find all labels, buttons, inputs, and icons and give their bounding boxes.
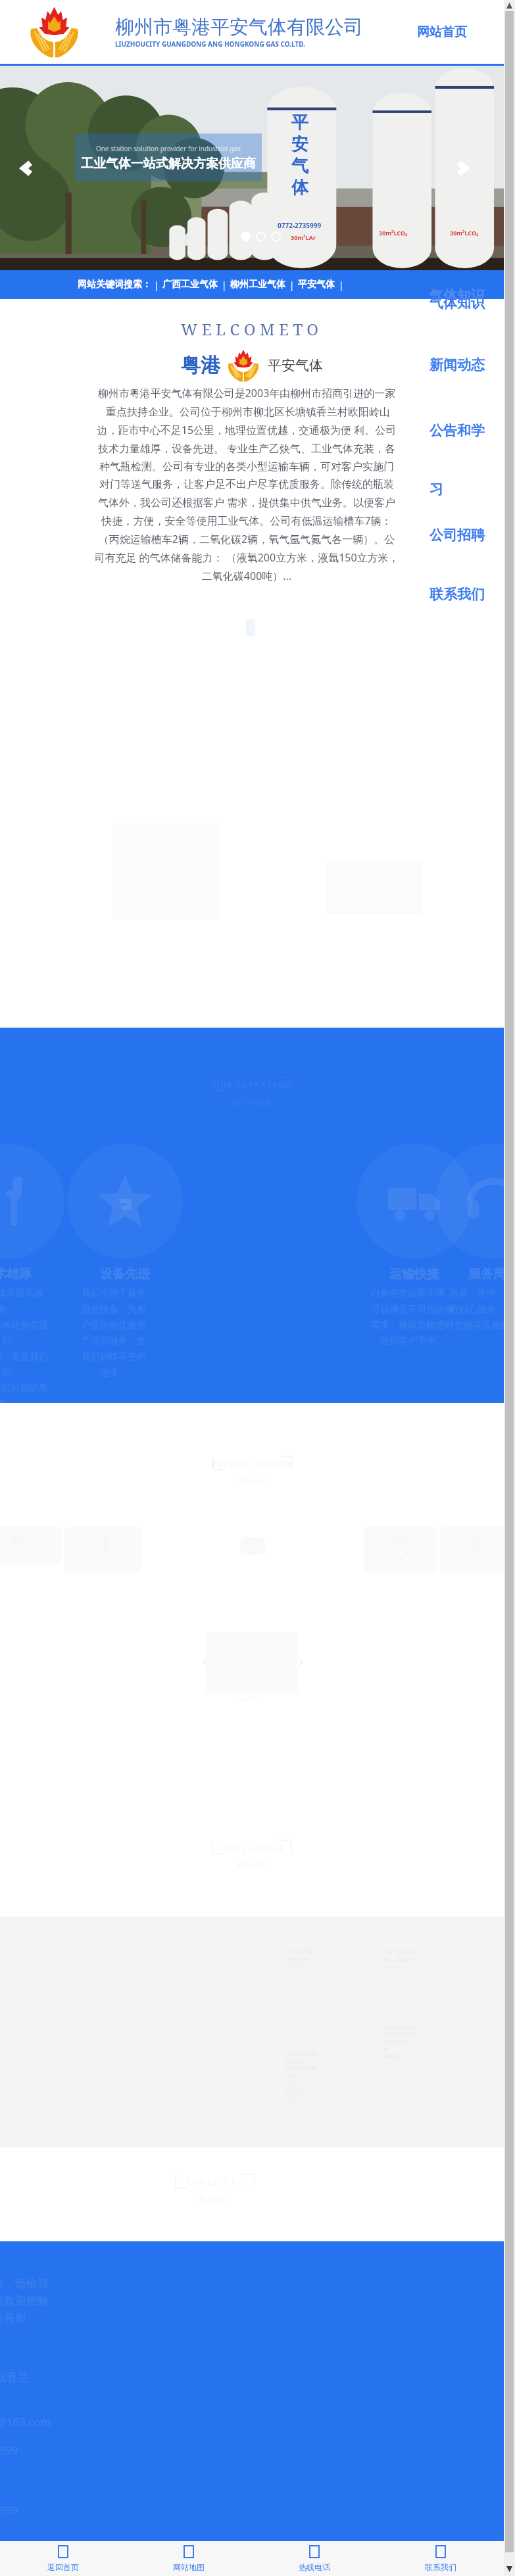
staticText: 技术雄厚 [0,1266,32,1282]
button[interactable]: 新闻动态 [429,354,485,375]
staticText: 习 [429,481,443,498]
staticText: 传真：0772-2735999 [0,2443,18,2458]
button[interactable]: Slide 2 [256,231,266,241]
staticText: 0772-2735999 [278,221,322,230]
staticText: 运输快捷 [389,1266,439,1282]
button[interactable]: 服务周到 [434,1143,515,1331]
staticText: | [287,279,297,291]
staticText: 网站首页 [417,24,467,40]
staticText: 工业气体一站式解决方案供应商 [81,156,256,172]
staticText: PRODUCT CENTER [212,1458,293,1469]
button[interactable]: 气体知识 [429,293,485,314]
staticText: 设备先进 [100,1266,150,1282]
staticText: 热线电话 [299,2562,330,2572]
staticText: 网站地图 [173,2562,205,2572]
staticText: 气体知识 [429,287,485,304]
staticText: 平安气体 [268,357,323,374]
button[interactable]: 网站首页 [409,19,475,45]
button[interactable]: 公司招聘 [429,525,485,546]
staticText: 联系我们 [429,586,485,603]
button[interactable]: 联系我们 [429,584,485,605]
button[interactable]: Previous slide [13,154,42,183]
button[interactable]: 技术雄厚 [0,1143,66,1410]
staticText: 自备各类运输车辆， 可以满足不同的运输 需求，确保货物准时 送到客户手中。 [371,1287,454,1347]
staticText: 如果您想了解更多关于我们的信息，请给我 [0,2277,49,2291]
button[interactable]: 习 [429,479,443,500]
staticText: CONTACT US [187,2176,243,2187]
button[interactable]: 联系我们 [378,2541,504,2576]
staticText: 气体知识 [429,295,485,312]
staticText: 公司招聘 [429,527,485,544]
staticText: 地址：广西柳州市柳北区长塘镇香兰 [0,2371,29,2385]
button[interactable]: Slide 1 [241,231,251,241]
staticText: 网站关键词搜索： [78,279,151,291]
staticText: 服务周到 [468,1266,515,1282]
staticText: 们留言，我们期待与您的合作，也欢迎您致 [0,2294,49,2308]
staticText: 平 安 气 体 [291,112,308,198]
staticText: One station solution provider for indust… [96,144,241,153]
staticText: 我们引进了最先 进的设备，为客 户提供最优质的 产品和服务，是 我们始终不变的 … [82,1287,146,1378]
staticText: LIUZHOUCITY GUANGDONG ANG HONGKONG GAS C… [115,39,305,49]
button[interactable]: Next slide [447,154,476,183]
button[interactable]: 广西工业气体 [161,279,219,291]
button[interactable]: 公告和学 [429,420,485,441]
button[interactable]: 网站地图 [126,2541,251,2576]
staticText: 平安气体 [298,279,335,291]
staticText: 30m³LCO₂ [379,229,408,237]
staticText: 电咨询，我司专业的客服人员将耐 [0,2311,26,2325]
staticText: 柳州工业气体 [230,279,285,291]
button[interactable]: Next product [295,1656,307,1668]
staticText: 公告和学 [429,422,485,439]
staticText: NEWS CENTER [220,1842,285,1853]
staticText: 售前、售中、售后全 程贴心服务，随时为 您解决装难问题。 [450,1287,515,1331]
staticText: 联系我们 [425,2562,456,2572]
staticText: 返回首页 [47,2562,79,2572]
staticText: 柳州市粤港平安气体有限公司是2003年由柳州市招商引进的一家 重点扶持企业。公司… [94,386,399,583]
button[interactable]: 工业 丙烷 气 [439,1527,512,1573]
staticText: 邮箱：liuzhouyuegang@163.com [0,2414,51,2429]
button[interactable]: 柳州工业气体 [229,279,287,291]
button[interactable]: 返回首页 [0,2541,126,2576]
button[interactable]: 设备先进 [66,1143,184,1378]
staticText: 电话：0772-2735999 [0,2502,18,2517]
staticText: 新闻动态 [429,356,485,373]
staticText: 粤港 [181,353,220,378]
staticText: 30m³LCO₂ [450,229,479,237]
button[interactable]: Previous product [199,1656,211,1668]
staticText: | [151,279,161,291]
button[interactable]: 运输快捷 [355,1143,474,1347]
staticText: | [219,279,229,291]
button[interactable]: 平安气体 [297,279,336,291]
button[interactable]: Slide 3 [271,231,281,241]
staticText: | [336,279,346,291]
button[interactable]: 热线电话 [251,2541,378,2576]
staticText: OUR ADVANTAGE [214,1079,291,1089]
